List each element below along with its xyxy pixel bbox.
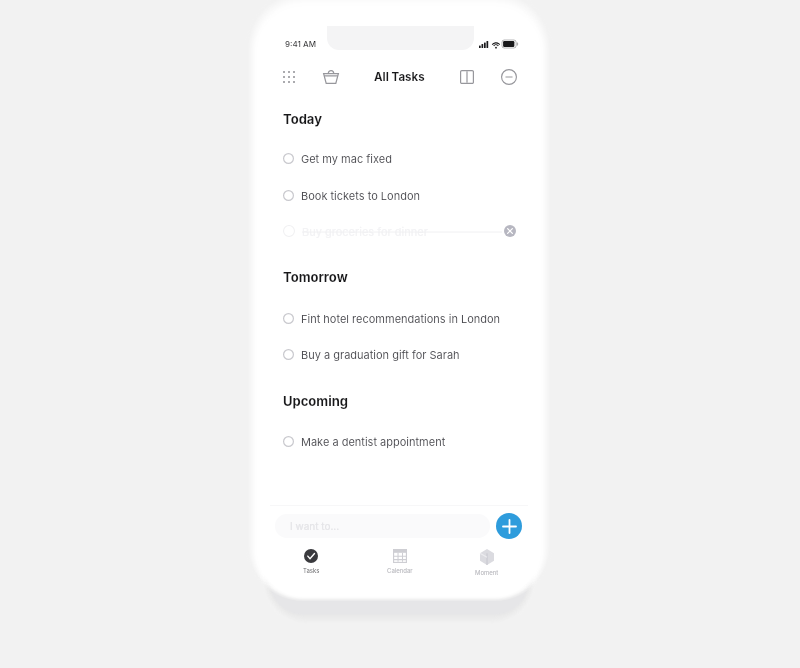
staticText: 9:41 AM xyxy=(285,39,316,49)
staticText: Calendar xyxy=(387,567,413,574)
staticText: Moment xyxy=(475,569,499,576)
button[interactable]: Moment xyxy=(459,547,515,581)
button[interactable]: Make a dentist appointment xyxy=(270,427,528,455)
button[interactable]: Buy a graduation gift for Sarah xyxy=(270,340,528,368)
button[interactable]: Apps xyxy=(275,63,303,91)
staticText: Book tickets to London xyxy=(301,189,420,202)
staticText: Buy a graduation gift for Sarah xyxy=(301,348,460,361)
button[interactable]: Add task xyxy=(496,513,522,539)
staticText: Upcoming xyxy=(283,393,349,409)
button[interactable]: Fint hotel recommendations in London xyxy=(270,304,528,332)
button[interactable]: Get my mac fixed xyxy=(270,144,528,172)
button[interactable]: Today xyxy=(278,108,327,130)
button[interactable]: Buy groceries for dinner xyxy=(270,217,528,245)
button[interactable]: All Tasks xyxy=(270,63,528,91)
staticText: Tasks xyxy=(303,567,320,574)
staticText: Get my mac fixed xyxy=(301,152,392,165)
button[interactable]: Upcoming xyxy=(278,390,354,412)
staticText: Make a dentist appointment xyxy=(301,435,446,448)
button[interactable]: Basket xyxy=(317,63,345,91)
staticText: Buy groceries for dinner xyxy=(302,225,428,238)
staticText: Today xyxy=(283,111,322,127)
staticText: Tomorrow xyxy=(283,269,348,285)
button[interactable]: Tomorrow xyxy=(278,266,353,288)
staticText: Fint hotel recommendations in London xyxy=(301,312,501,325)
staticText: I want to... xyxy=(290,520,340,532)
button[interactable]: Book tickets to London xyxy=(270,181,528,209)
button[interactable]: Calendar xyxy=(372,547,428,581)
button[interactable]: Tasks xyxy=(283,547,339,581)
button[interactable]: Hide completed xyxy=(495,63,523,91)
staticText: All Tasks xyxy=(374,70,425,84)
button[interactable]: Board xyxy=(453,63,481,91)
button[interactable]: Delete task xyxy=(504,225,516,237)
